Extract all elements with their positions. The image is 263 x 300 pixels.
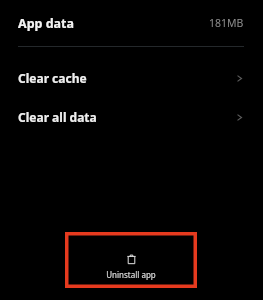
button[interactable]: Uninstall app xyxy=(65,232,197,288)
staticText: Uninstall app xyxy=(106,269,156,280)
button[interactable]: Clear cache xyxy=(0,66,263,90)
button[interactable]: Clear all data xyxy=(0,105,263,129)
staticText: Clear all data xyxy=(18,109,97,125)
staticText: Clear cache xyxy=(18,70,87,86)
staticText: App data xyxy=(18,15,75,32)
staticText: 181MB xyxy=(209,16,244,30)
